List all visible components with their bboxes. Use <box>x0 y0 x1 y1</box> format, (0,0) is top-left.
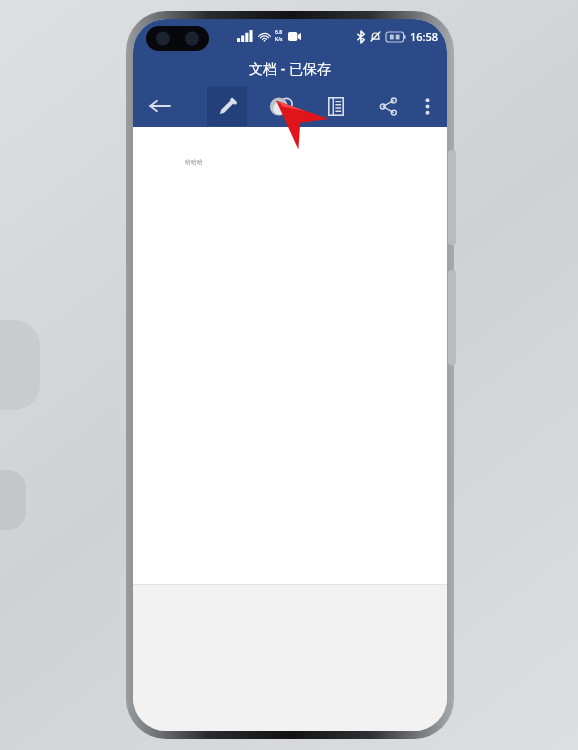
staticText: K/s <box>275 36 283 43</box>
staticText: 哈哈哈 <box>185 158 203 166</box>
staticText: 文档 - 已保存 <box>249 59 331 78</box>
staticText: 16:58 <box>410 29 439 44</box>
button[interactable]: 返回 <box>133 85 185 127</box>
button[interactable]: 文档视图 <box>317 86 355 126</box>
button[interactable]: 搜索 <box>265 86 303 126</box>
button[interactable]: 分享 <box>369 86 407 126</box>
staticText: 6.8 <box>275 29 283 36</box>
button[interactable]: 编辑 <box>207 86 247 126</box>
button[interactable]: 更多选项 <box>411 86 443 126</box>
